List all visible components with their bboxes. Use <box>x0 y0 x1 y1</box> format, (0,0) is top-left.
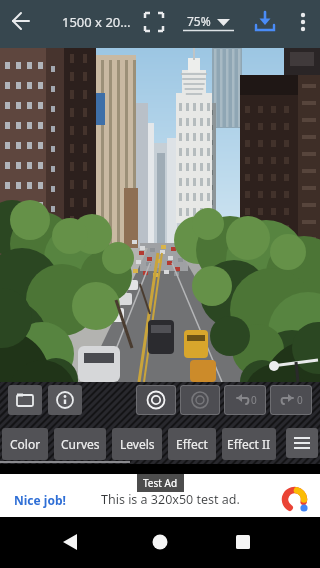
button[interactable]: Test Ad <box>0 474 320 517</box>
button[interactable]: Color <box>2 428 48 460</box>
staticText: Test Ad <box>143 476 178 490</box>
button[interactable]: Curves <box>54 428 106 460</box>
staticText: Color <box>10 436 41 452</box>
button[interactable] <box>106 517 213 568</box>
button[interactable]: 0 <box>270 385 312 415</box>
button[interactable] <box>138 0 172 48</box>
staticText: Effect II <box>227 436 271 452</box>
staticText: 0 <box>251 393 257 407</box>
button[interactable]: 75% <box>187 13 211 29</box>
button[interactable] <box>8 385 42 415</box>
staticText: Effect <box>176 436 208 452</box>
button[interactable]: Effect II <box>222 428 276 460</box>
button[interactable] <box>136 385 176 415</box>
staticText: This is a 320x50 test ad. <box>101 491 240 508</box>
button[interactable] <box>0 0 40 48</box>
button[interactable]: 1500 x 20… <box>62 13 131 31</box>
staticText: Curves <box>61 436 100 452</box>
staticText: Levels <box>120 436 155 452</box>
button[interactable] <box>180 385 220 415</box>
button[interactable] <box>48 385 82 415</box>
button[interactable]: Levels <box>112 428 162 460</box>
staticText: 0 <box>297 393 303 407</box>
button[interactable] <box>180 0 238 48</box>
button[interactable] <box>248 0 284 48</box>
button[interactable] <box>213 517 320 568</box>
staticText: Nice job! <box>14 492 66 508</box>
button[interactable] <box>286 428 318 458</box>
button[interactable] <box>288 0 320 48</box>
button[interactable] <box>0 517 106 568</box>
button[interactable]: Effect <box>168 428 216 460</box>
button[interactable]: 0 <box>224 385 266 415</box>
